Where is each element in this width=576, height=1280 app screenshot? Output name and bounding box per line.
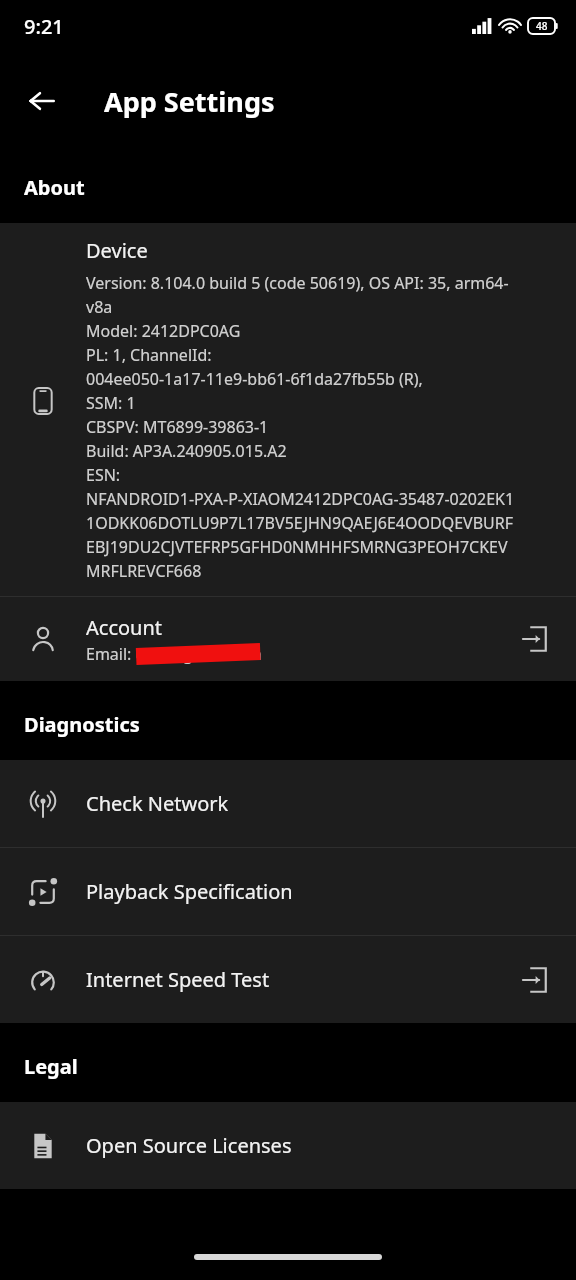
staticText: Open Source Licenses — [86, 1132, 292, 1159]
staticText: Playback Specification — [86, 878, 293, 905]
button[interactable]: Internet Speed Test — [0, 936, 576, 1023]
staticText: App Settings — [104, 83, 275, 120]
button[interactable]: Back — [14, 73, 70, 129]
staticText: 9:21 — [24, 13, 64, 40]
button[interactable]: Device — [0, 223, 576, 596]
staticText: Version: 8.104.0 build 5 (code 50619), O… — [86, 272, 516, 582]
staticText: Diagnostics — [24, 711, 140, 738]
staticText: Device — [86, 237, 148, 264]
staticText: Internet Speed Test — [86, 966, 270, 993]
staticText: 48 — [536, 19, 548, 33]
button[interactable]: Playback Specification — [0, 848, 576, 935]
button[interactable]: Account — [0, 597, 576, 681]
staticText: Check Network — [86, 790, 229, 817]
button[interactable]: Check Network — [0, 760, 576, 847]
staticText: Email: user@gmail.com — [86, 643, 262, 665]
button[interactable]: Open Source Licenses — [0, 1102, 576, 1189]
button[interactable]: Sign out — [510, 615, 558, 663]
staticText: Legal — [24, 1053, 78, 1080]
staticText: About — [24, 174, 85, 201]
button[interactable]: Open Internet Speed Test — [510, 956, 558, 1004]
staticText: Account — [86, 614, 163, 641]
